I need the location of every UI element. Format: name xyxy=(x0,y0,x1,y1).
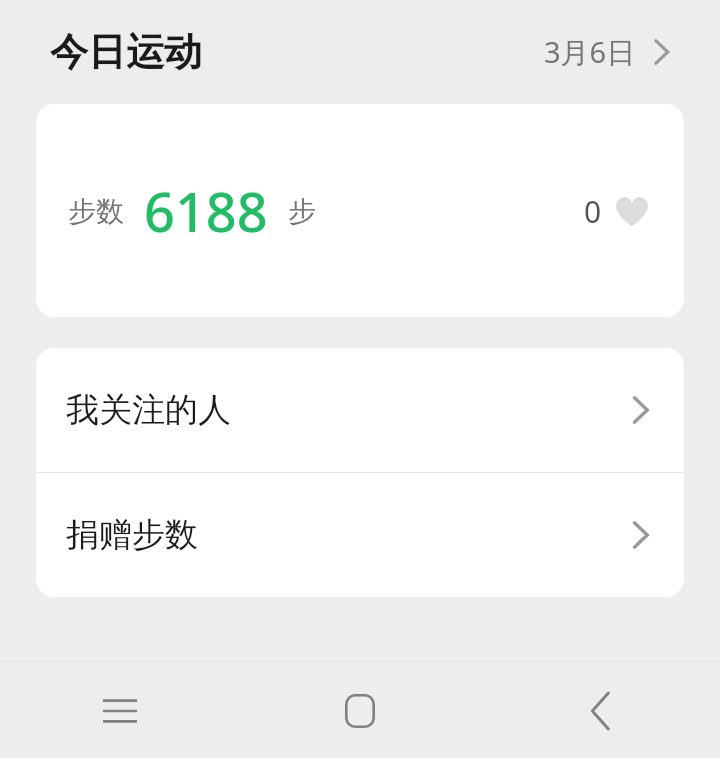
button[interactable]: 步数 xyxy=(36,104,684,317)
staticText: 3月6日 xyxy=(544,32,636,72)
staticText: 6188 xyxy=(144,174,268,248)
button[interactable]: Home xyxy=(240,663,480,758)
button[interactable]: 3月6日 xyxy=(534,24,684,80)
button[interactable]: 0 xyxy=(584,191,652,232)
staticText: 今日运动 xyxy=(50,28,202,76)
staticText: 0 xyxy=(584,191,602,232)
button[interactable]: Back xyxy=(480,663,720,758)
button[interactable]: 我关注的人 xyxy=(36,348,684,472)
button[interactable]: 捐赠步数 xyxy=(36,473,684,597)
other: Like xyxy=(612,192,652,232)
staticText: 我关注的人 xyxy=(66,389,231,431)
button[interactable]: Recent apps xyxy=(0,663,240,758)
staticText: 捐赠步数 xyxy=(66,514,198,556)
staticText: 步 xyxy=(288,194,316,229)
staticText: 步数 xyxy=(68,194,124,229)
